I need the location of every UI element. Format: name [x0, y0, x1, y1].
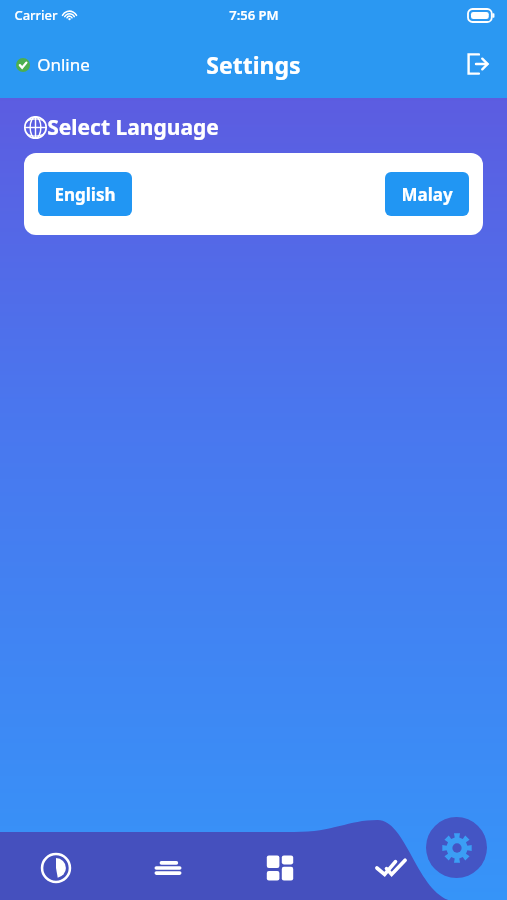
button[interactable]: English — [38, 172, 132, 216]
staticText: English — [54, 183, 116, 206]
button[interactable]: Completed — [335, 842, 446, 894]
staticText: Settings — [206, 49, 301, 80]
button[interactable]: Dashboard — [224, 842, 335, 894]
button[interactable]: Malay — [385, 172, 469, 216]
button[interactable]: Online — [8, 47, 98, 82]
button[interactable]: Settings — [426, 817, 487, 878]
button[interactable]: Timer — [0, 842, 112, 894]
staticText: Carrier — [14, 6, 58, 24]
staticText: Online — [37, 53, 90, 76]
button[interactable]: Sort — [112, 842, 224, 894]
staticText: Malay — [401, 183, 453, 206]
button[interactable]: Log out — [455, 42, 499, 86]
staticText: Select Language — [47, 113, 219, 142]
staticText: 7:56 PM — [229, 6, 279, 24]
